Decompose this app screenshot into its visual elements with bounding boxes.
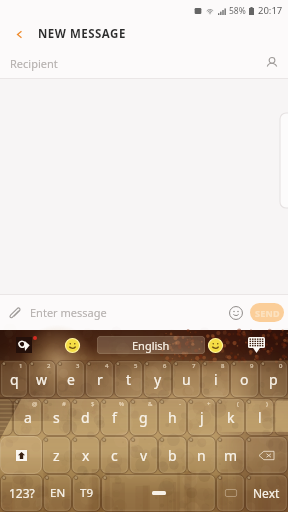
button[interactable]: u — [172, 360, 201, 398]
staticText: q — [10, 370, 19, 389]
staticText: ( — [237, 400, 239, 408]
staticText: - — [179, 400, 181, 408]
staticText: 8 — [221, 362, 225, 370]
staticText: h — [168, 408, 177, 427]
staticText: j — [200, 408, 204, 427]
staticText: 5 — [134, 362, 138, 370]
button[interactable]: Emoji — [48, 330, 97, 360]
staticText: + — [207, 400, 211, 408]
staticText: Next — [253, 485, 280, 501]
staticText: 2 — [47, 362, 51, 370]
staticText: 1 — [19, 362, 23, 370]
button[interactable]: f — [100, 398, 129, 436]
staticText: t — [126, 370, 132, 389]
staticText: p — [269, 370, 278, 389]
button[interactable]: y — [143, 360, 172, 398]
button[interactable]: e — [56, 360, 85, 398]
button[interactable]: s — [42, 398, 71, 436]
staticText: $ — [91, 400, 95, 408]
button[interactable]: Back — [0, 20, 38, 48]
staticText: @ — [32, 400, 38, 408]
button[interactable]: Shift — [0, 436, 42, 474]
button[interactable]: t — [114, 360, 143, 398]
button[interactable]: c — [100, 436, 129, 474]
button[interactable]: Symbols — [216, 474, 245, 512]
button[interactable]: T9 — [72, 474, 101, 512]
staticText: g — [139, 408, 148, 427]
staticText: ) — [266, 400, 268, 408]
staticText: # — [62, 400, 66, 408]
staticText: 4 — [105, 362, 109, 370]
button[interactable]: n — [187, 436, 216, 474]
staticText: b — [168, 446, 177, 465]
button[interactable]: b — [158, 436, 187, 474]
staticText: d — [81, 408, 90, 427]
button[interactable]: Space — [101, 474, 216, 512]
button[interactable]: z — [42, 436, 71, 474]
staticText: i — [214, 370, 218, 389]
staticText: 9 — [250, 362, 254, 370]
staticText: T9 — [80, 485, 93, 501]
staticText: e — [67, 370, 75, 389]
button[interactable]: EN — [43, 474, 72, 512]
staticText: 123? — [9, 485, 35, 501]
button[interactable]: Add contact — [256, 48, 288, 78]
staticText: n — [197, 446, 206, 465]
staticText: v — [140, 446, 148, 465]
staticText: r — [97, 370, 103, 389]
staticText: x — [82, 446, 90, 465]
button[interactable]: Hide keyboard — [225, 330, 288, 360]
staticText: Enter message — [30, 305, 107, 320]
staticText: & — [148, 400, 153, 408]
button[interactable]: o — [230, 360, 259, 398]
button[interactable]: 123? — [0, 474, 43, 512]
staticText: 7 — [192, 362, 196, 370]
button[interactable]: v — [129, 436, 158, 474]
button[interactable]: Next — [245, 474, 288, 512]
staticText: k — [227, 408, 235, 427]
staticText: m — [224, 446, 238, 465]
staticText: 6 — [163, 362, 167, 370]
staticText: 20:17 — [258, 4, 283, 17]
button[interactable]: Emoji — [222, 295, 250, 330]
button[interactable]: i — [201, 360, 230, 398]
button[interactable]: Stickers — [205, 330, 225, 360]
staticText: c — [111, 446, 118, 465]
staticText: w — [36, 370, 48, 389]
button[interactable]: a — [13, 398, 42, 436]
button[interactable]: Attach — [0, 295, 30, 330]
button[interactable]: w — [28, 360, 56, 398]
button[interactable]: r — [85, 360, 114, 398]
button[interactable]: g — [129, 398, 158, 436]
button[interactable]: SEND — [250, 303, 284, 322]
button[interactable]: x — [71, 436, 100, 474]
staticText: English — [132, 338, 170, 353]
button[interactable]: Backspace — [245, 436, 288, 474]
button[interactable]: q — [0, 360, 28, 398]
staticText: SEND — [255, 307, 280, 319]
staticText: a — [24, 408, 32, 427]
staticText: z — [53, 446, 60, 465]
staticText: y — [154, 370, 162, 389]
staticText: NEW MESSAGE — [38, 26, 126, 42]
staticText: l — [258, 408, 262, 427]
staticText: 0 — [279, 362, 283, 370]
button[interactable]: m — [216, 436, 245, 474]
button[interactable]: h — [158, 398, 187, 436]
staticText: u — [182, 370, 191, 389]
staticText: EN — [50, 485, 66, 501]
button[interactable]: Themes — [0, 330, 48, 360]
staticText: % — [119, 400, 124, 408]
staticText: 3 — [76, 362, 80, 370]
staticText: s — [53, 408, 60, 427]
staticText: o — [240, 370, 249, 389]
staticText: 58% — [229, 5, 246, 17]
button[interactable]: d — [71, 398, 100, 436]
button[interactable]: English — [97, 336, 205, 354]
button[interactable]: p — [259, 360, 288, 398]
staticText: Recipient — [10, 56, 58, 71]
button[interactable]: k — [216, 398, 245, 436]
button[interactable]: l — [245, 398, 274, 436]
staticText: f — [112, 408, 117, 427]
button[interactable]: j — [187, 398, 216, 436]
